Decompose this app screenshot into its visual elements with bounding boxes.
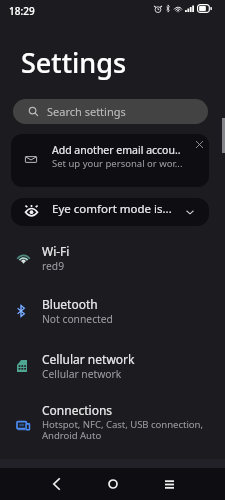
button[interactable]: Search settings bbox=[13, 99, 208, 124]
staticText: Cellular network bbox=[42, 367, 122, 381]
button[interactable]: Eye comfort mode is... bbox=[11, 198, 209, 226]
staticText: Settings bbox=[21, 44, 127, 81]
button[interactable]: Cellular network bbox=[0, 351, 225, 405]
staticText: Cellular network bbox=[42, 351, 135, 367]
button[interactable]: Recent apps bbox=[155, 470, 183, 498]
button[interactable]: Home bbox=[99, 470, 127, 498]
staticText: 18:29 bbox=[9, 4, 35, 18]
staticText: Search settings bbox=[47, 104, 126, 119]
button[interactable]: Connections bbox=[0, 402, 225, 456]
button[interactable]: Bluetooth bbox=[0, 296, 225, 350]
staticText: Hotspot, NFC, Cast, USB connection, Andr… bbox=[42, 418, 203, 442]
staticText: Set up your personal or wor... bbox=[52, 157, 183, 170]
button[interactable]: Back bbox=[42, 470, 70, 498]
staticText: Not connected bbox=[42, 312, 113, 326]
button[interactable]: Wi-Fi bbox=[0, 243, 225, 297]
staticText: red9 bbox=[42, 259, 65, 273]
staticText: Eye comfort mode is... bbox=[52, 201, 172, 217]
button[interactable]: Add another email accou.. bbox=[11, 134, 209, 187]
staticText: Wi-Fi bbox=[42, 243, 70, 259]
staticText: Add another email accou.. bbox=[52, 143, 181, 157]
button[interactable]: Dismiss suggestion bbox=[192, 137, 206, 151]
staticText: Connections bbox=[42, 402, 113, 418]
staticText: Bluetooth bbox=[42, 296, 98, 312]
